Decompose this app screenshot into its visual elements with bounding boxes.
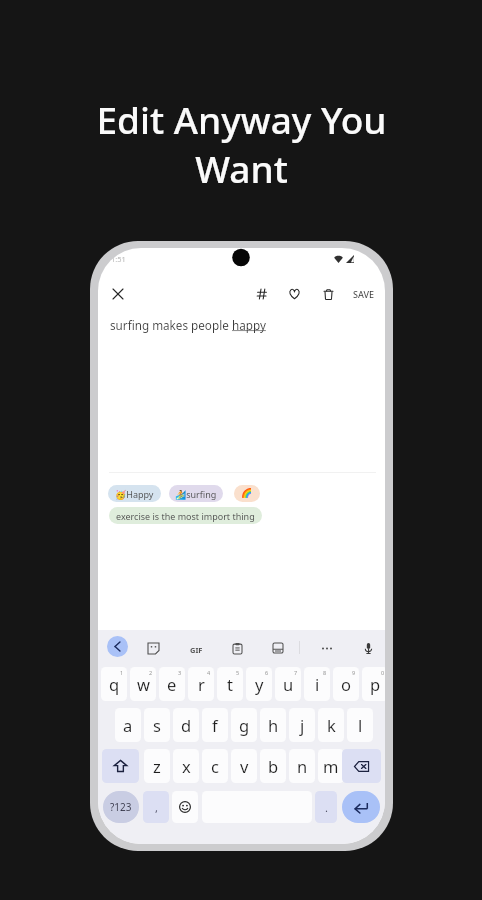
staticText: happy <box>232 317 266 333</box>
button[interactable]: i <box>304 667 330 701</box>
staticText: c <box>211 755 219 777</box>
staticText: g <box>239 714 250 736</box>
button[interactable]: t <box>217 667 243 701</box>
button[interactable]: Close <box>108 284 128 304</box>
staticText: r <box>198 673 205 695</box>
button[interactable]: e <box>159 667 185 701</box>
staticText: z <box>153 755 161 777</box>
button[interactable]: c <box>202 749 228 783</box>
button[interactable]: j <box>289 708 315 742</box>
staticText: 3 <box>178 669 182 676</box>
button[interactable]: Translate <box>268 638 288 658</box>
button[interactable]: y <box>246 667 272 701</box>
staticText: 7 <box>294 669 298 676</box>
button[interactable]: l <box>347 708 373 742</box>
button[interactable]: Delete <box>318 284 338 304</box>
button[interactable]: m <box>318 749 344 783</box>
button[interactable]: v <box>231 749 257 783</box>
staticText: ?123 <box>110 800 132 814</box>
button[interactable]: . <box>315 791 337 823</box>
staticText: s <box>153 714 161 736</box>
button[interactable]: 🏄surfing <box>169 485 223 502</box>
staticText: exercise is the most import thing <box>116 510 255 522</box>
button[interactable]: a <box>115 708 141 742</box>
staticText: 🏄surfing <box>175 488 217 500</box>
button[interactable]: b <box>260 749 286 783</box>
button[interactable]: u <box>275 667 301 701</box>
staticText: h <box>268 714 279 736</box>
staticText: b <box>268 755 279 777</box>
staticText: . <box>325 800 328 815</box>
button[interactable]: Clipboard <box>227 638 247 658</box>
staticText: v <box>240 755 249 777</box>
staticText: 9 <box>352 669 356 676</box>
staticText: , <box>155 800 158 815</box>
button[interactable]: q <box>101 667 127 701</box>
staticText: f <box>212 714 218 736</box>
staticText: Edit Anyway You Want <box>96 94 387 194</box>
button[interactable]: g <box>231 708 257 742</box>
staticText: 4 <box>207 669 211 676</box>
button[interactable]: d <box>173 708 199 742</box>
button[interactable]: GIF <box>184 638 208 662</box>
staticText: j <box>300 714 305 736</box>
staticText: 1 <box>120 669 124 676</box>
button[interactable]: Shift <box>102 749 139 783</box>
staticText: e <box>167 673 177 695</box>
staticText: x <box>182 755 191 777</box>
button[interactable]: h <box>260 708 286 742</box>
staticText: 🌈 <box>241 488 253 499</box>
staticText: GIF <box>190 645 203 655</box>
staticText: a <box>123 714 133 736</box>
staticText: t <box>227 673 233 695</box>
staticText: n <box>297 755 308 777</box>
button[interactable]: o <box>333 667 359 701</box>
button[interactable]: Enter <box>342 791 380 823</box>
button[interactable]: exercise is the most import thing <box>109 507 262 524</box>
staticText: 1:51 <box>111 254 126 264</box>
staticText: 0 <box>381 669 385 676</box>
button[interactable]: p <box>362 667 385 701</box>
staticText: u <box>283 673 294 695</box>
staticText: 2 <box>149 669 153 676</box>
staticText: i <box>315 673 320 695</box>
button[interactable]: Back <box>107 636 128 657</box>
button[interactable]: Voice input <box>358 638 378 658</box>
staticText: SAVE <box>353 288 375 300</box>
button[interactable]: 🌈 <box>234 485 260 502</box>
staticText: y <box>255 673 264 695</box>
button[interactable]: SAVE <box>350 284 378 304</box>
button[interactable]: w <box>130 667 156 701</box>
button[interactable]: s <box>144 708 170 742</box>
staticText: m <box>323 755 339 777</box>
staticText: d <box>181 714 192 736</box>
button[interactable]: n <box>289 749 315 783</box>
button[interactable]: , <box>143 791 169 823</box>
button[interactable]: Emoji <box>172 791 198 823</box>
button[interactable]: Tags <box>252 284 272 304</box>
staticText: 🥳Happy <box>115 488 154 500</box>
button[interactable]: f <box>202 708 228 742</box>
button[interactable]: r <box>188 667 214 701</box>
staticText: q <box>109 673 120 695</box>
button[interactable]: ?123 <box>103 791 139 823</box>
staticText: 8 <box>323 669 327 676</box>
button[interactable]: Favorite <box>284 284 304 304</box>
button[interactable]: More options <box>317 638 337 658</box>
staticText: 5 <box>236 669 240 676</box>
button[interactable]: Backspace <box>342 749 381 783</box>
staticText: k <box>327 714 336 736</box>
staticText: l <box>358 714 363 736</box>
staticText: w <box>137 673 150 695</box>
staticText: o <box>341 673 351 695</box>
staticText: p <box>370 673 381 695</box>
button[interactable]: k <box>318 708 344 742</box>
button[interactable]: x <box>173 749 199 783</box>
staticText: surfing makes people <box>110 317 232 333</box>
button[interactable]: 🥳Happy <box>108 485 161 502</box>
button[interactable]: Stickers <box>143 638 163 658</box>
button[interactable]: z <box>144 749 170 783</box>
staticText: 6 <box>265 669 269 676</box>
